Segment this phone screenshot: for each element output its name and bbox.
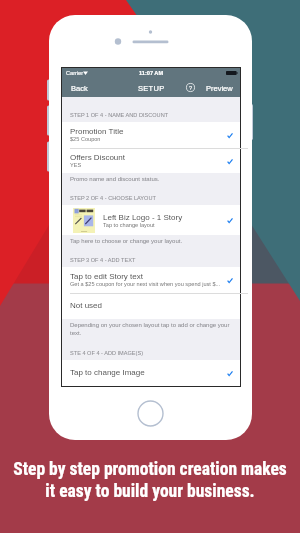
staticText: YES (70, 162, 82, 168)
button[interactable]: Back (62, 80, 93, 96)
staticText: Promo name and discount status. (70, 176, 160, 183)
staticText: Tap to change Image (70, 368, 145, 377)
staticText: Carrier (66, 70, 84, 76)
staticText: ? (189, 85, 193, 91)
button[interactable]: Promotion Title (62, 122, 240, 148)
staticText: Not used (70, 301, 103, 310)
button[interactable]: Preview (202, 80, 240, 96)
staticText: Get a $25 coupon for your next visit whe… (70, 281, 221, 287)
button[interactable]: Tap to change Image (62, 360, 240, 386)
staticText: STE 4 OF 4 - ADD IMAGE(S) (70, 350, 144, 356)
staticText: Tap here to choose or change your layout… (70, 238, 183, 245)
staticText: Promotion Title (70, 127, 124, 136)
staticText: Tap to change layout (103, 222, 155, 228)
staticText: Tap to edit Story text (70, 272, 143, 281)
staticText: 11:07 AM (139, 70, 164, 76)
staticText: Offers Discount (70, 153, 125, 162)
staticText: STEP 3 OF 4 - ADD TEXT (70, 257, 136, 263)
staticText: STEP 2 OF 4 - CHOOSE LAYOUT (70, 195, 156, 201)
staticText: Depending on your chosen layout tap to a… (70, 322, 230, 336)
button[interactable]: Help (186, 83, 195, 92)
button[interactable]: Not used (62, 294, 240, 319)
staticText: Left Biz Logo - 1 Story (103, 213, 183, 222)
staticText: SETUP (138, 84, 165, 92)
button[interactable]: Left Biz Logo - 1 Story (62, 205, 240, 235)
button[interactable]: Offers Discount (62, 149, 240, 173)
button[interactable]: Tap to edit Story text (62, 267, 240, 293)
staticText: STEP 1 OF 4 - NAME AND DISCOUNT (70, 112, 169, 118)
staticText: $25 Coupon (70, 136, 101, 142)
staticText: Step by step promotion creation makes it… (0, 459, 300, 501)
